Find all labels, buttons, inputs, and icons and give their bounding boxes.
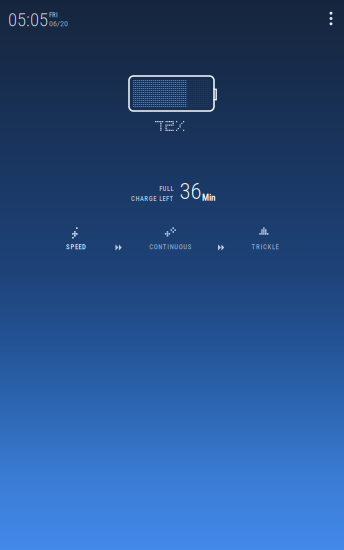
staticText: Min — [202, 192, 216, 203]
staticText: CHARGE LEFT — [131, 195, 173, 203]
staticText: SPEED — [66, 243, 86, 251]
button[interactable]: CONTINUOUS — [134, 226, 206, 252]
staticText: 05:05 — [8, 9, 48, 31]
staticText: CONTINUOUS — [149, 243, 192, 251]
staticText: FRI — [49, 11, 58, 19]
staticText: 06/20 — [49, 19, 68, 28]
staticText: 36 — [179, 178, 201, 205]
button[interactable]: SPEED — [40, 226, 112, 252]
staticText: TRICKLE — [251, 243, 278, 251]
button[interactable]: More options — [316, 3, 344, 33]
button[interactable]: TRICKLE — [229, 226, 301, 252]
staticText: FULL — [159, 185, 174, 193]
